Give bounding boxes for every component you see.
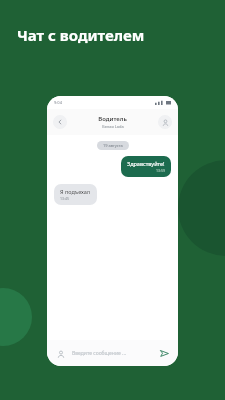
staticText: Я подъехал (60, 188, 91, 195)
button[interactable]: Send (157, 346, 171, 360)
staticText: Введите сообщение ... (72, 350, 157, 357)
staticText: 9:04 (54, 100, 62, 105)
staticText: Водитель (98, 115, 127, 123)
staticText: 13:45 (60, 196, 69, 201)
staticText: Чат с водителем (17, 25, 145, 45)
button[interactable]: Attach location (54, 347, 67, 360)
staticText: Белая Lada (102, 124, 124, 129)
button[interactable]: Profile (158, 115, 172, 129)
staticText: 13:59 (156, 168, 165, 173)
button[interactable]: Back (53, 115, 67, 129)
staticText: Здравствуйте! (127, 160, 165, 167)
staticText: 19 августа (103, 143, 123, 148)
